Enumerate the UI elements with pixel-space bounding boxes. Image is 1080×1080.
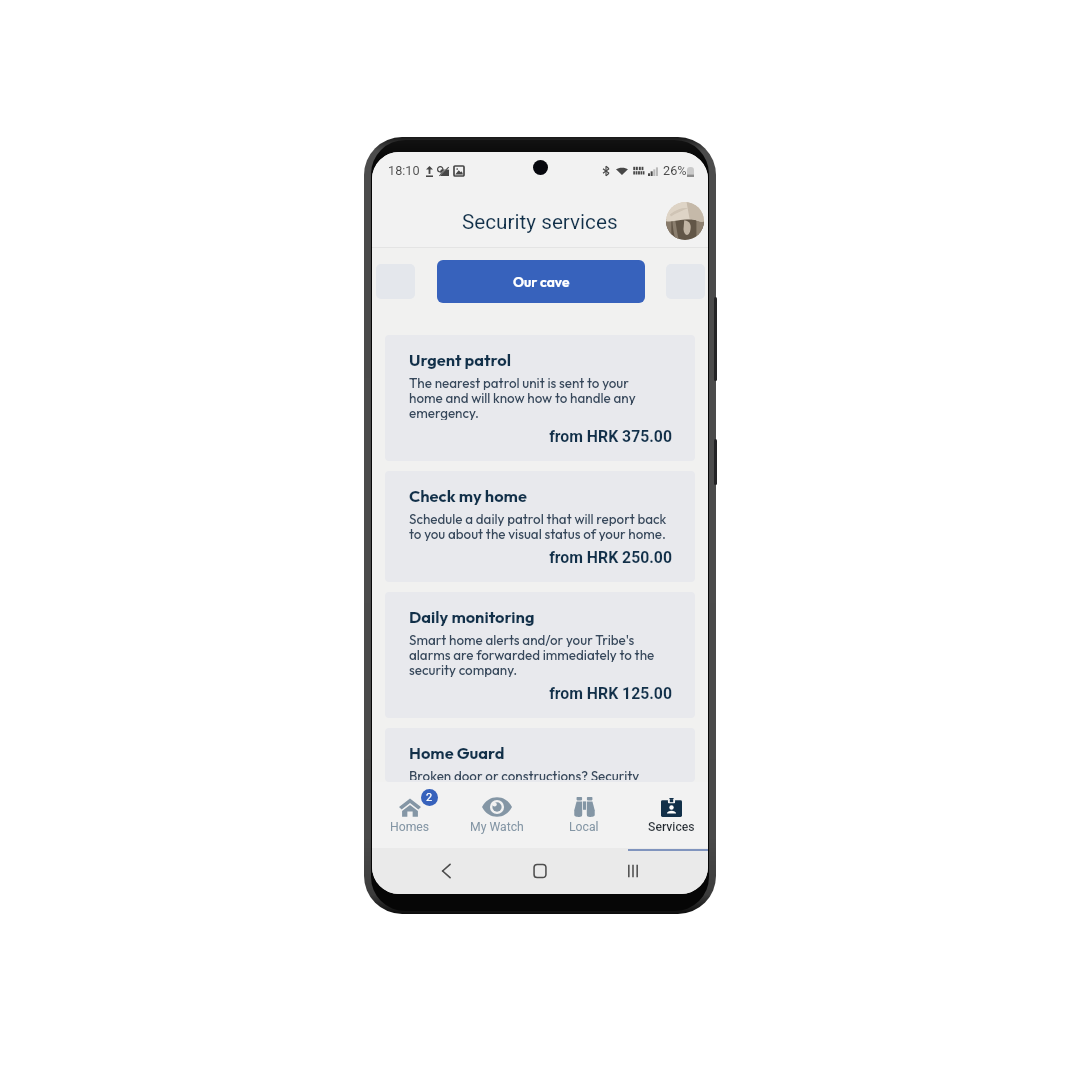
- button[interactable]: Urgent patrol: [385, 335, 695, 461]
- staticText: home and will know how to handle any: [409, 390, 636, 405]
- staticText: Home Guard: [409, 743, 505, 764]
- staticText: Services: [648, 820, 695, 834]
- staticText: Security services: [462, 210, 618, 234]
- button[interactable]: Home: [529, 860, 551, 882]
- button[interactable]: Back: [436, 860, 458, 882]
- staticText: Check my home: [409, 486, 527, 507]
- button[interactable]: My Watch: [455, 782, 539, 848]
- staticText: Broken door or constructions? Security: [409, 768, 640, 780]
- staticText: from HRK 125.00: [385, 684, 672, 703]
- staticText: 26%: [663, 163, 687, 178]
- staticText: emergency.: [409, 405, 479, 420]
- button[interactable]: Daily monitoring: [385, 592, 695, 718]
- button[interactable]: Recents: [622, 860, 644, 882]
- staticText: Homes: [390, 820, 430, 834]
- staticText: Urgent patrol: [409, 350, 511, 371]
- staticText: Schedule a daily patrol that will report…: [409, 511, 667, 526]
- button[interactable]: Local: [542, 782, 626, 848]
- staticText: to you about the visual status of your h…: [409, 526, 666, 541]
- button[interactable]: Home Guard: [385, 728, 695, 782]
- staticText: Daily monitoring: [409, 607, 535, 628]
- staticText: Our cave: [513, 273, 570, 290]
- button[interactable]: Check my home: [385, 471, 695, 582]
- staticText: from HRK 250.00: [385, 548, 672, 567]
- staticText: Smart home alerts and/or your Tribe's: [409, 632, 635, 647]
- staticText: alarms are forwarded immediately to the: [409, 647, 655, 662]
- button[interactable]: 2: [372, 782, 452, 848]
- button[interactable]: Profile: [666, 202, 704, 240]
- staticText: My Watch: [470, 820, 524, 834]
- button[interactable]: Our cave: [437, 260, 645, 303]
- staticText: from HRK 375.00: [385, 427, 672, 446]
- staticText: Local: [569, 820, 599, 834]
- staticText: 2: [426, 791, 433, 804]
- staticText: The nearest patrol unit is sent to your: [409, 375, 629, 390]
- staticText: security company.: [409, 662, 518, 677]
- staticText: 18:10: [388, 163, 420, 178]
- button[interactable]: Services: [629, 782, 708, 848]
